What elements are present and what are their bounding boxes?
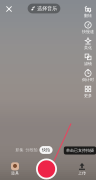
button[interactable]: 更多 xyxy=(79,84,96,98)
button[interactable]: 分段拍 xyxy=(23,145,39,154)
button[interactable]: 快慢速 xyxy=(79,20,96,34)
button[interactable]: 滤镜 xyxy=(79,52,96,66)
staticText: 翻转 xyxy=(84,13,92,18)
button[interactable]: 翻转 xyxy=(79,4,96,18)
button[interactable]: 美化 xyxy=(79,36,96,50)
button[interactable]: 道具 xyxy=(6,162,24,176)
button[interactable]: 上传 xyxy=(73,162,91,176)
button[interactable]: 关闭 xyxy=(1,1,17,17)
button[interactable]: 倒计时 xyxy=(79,68,96,82)
staticText: 快拍 xyxy=(42,147,50,152)
staticText: 道具 xyxy=(11,171,19,176)
button[interactable]: 快拍 xyxy=(39,146,53,154)
staticText: 上传 xyxy=(78,171,86,176)
button[interactable]: 选择音乐 xyxy=(28,4,60,13)
staticText: 倒计时 xyxy=(82,77,94,82)
staticText: 滤镜 xyxy=(84,61,92,66)
staticText: 美化 xyxy=(84,45,92,50)
staticText: 快慢速 xyxy=(82,29,94,34)
button[interactable]: 拍摄 xyxy=(36,158,57,179)
button[interactable]: 影集 xyxy=(13,145,25,154)
staticText: 影集 xyxy=(15,147,23,152)
staticText: 选择音乐 xyxy=(37,5,57,12)
staticText: 分段拍 xyxy=(25,147,37,152)
staticText: 更多 xyxy=(84,93,92,98)
staticText: 单击已支持拍摄 xyxy=(66,148,94,153)
